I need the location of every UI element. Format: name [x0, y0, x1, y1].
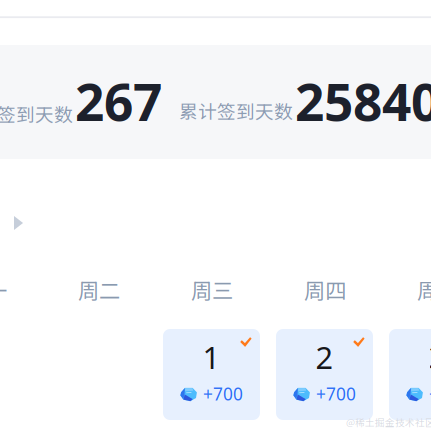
staticText: +700 [203, 382, 243, 406]
staticText: 25840 [295, 66, 431, 136]
staticText: 周一 [0, 274, 7, 305]
staticText: 周三 [191, 274, 233, 305]
staticText: 周五 [417, 274, 431, 305]
staticText: 周四 [304, 274, 346, 305]
button[interactable]: 3 [389, 329, 431, 420]
staticText: 1 [202, 336, 220, 378]
staticText: 周二 [78, 274, 120, 305]
staticText: +700 [429, 382, 431, 406]
staticText: 累计签到天数 [179, 97, 293, 124]
button[interactable]: 展开 [14, 216, 23, 230]
staticText: @稀土掘金技术社区 [346, 415, 431, 429]
staticText: 267 [75, 66, 162, 136]
staticText: 2 [315, 336, 333, 378]
staticText: +700 [316, 382, 356, 406]
button[interactable]: 2 [276, 329, 373, 420]
staticText: 签到天数 [0, 100, 73, 127]
staticText: 3 [428, 336, 431, 378]
button[interactable]: 1 [163, 329, 260, 420]
